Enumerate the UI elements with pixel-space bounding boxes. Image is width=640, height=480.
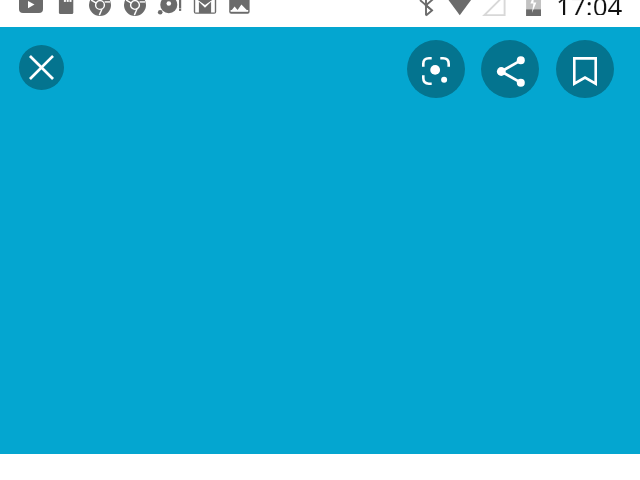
staticText: 17:04: [556, 0, 623, 15]
button[interactable]: Bookmark: [556, 40, 614, 98]
button[interactable]: Share: [481, 40, 539, 98]
button[interactable]: Close: [19, 45, 64, 90]
button[interactable]: Search with Lens: [407, 40, 465, 98]
